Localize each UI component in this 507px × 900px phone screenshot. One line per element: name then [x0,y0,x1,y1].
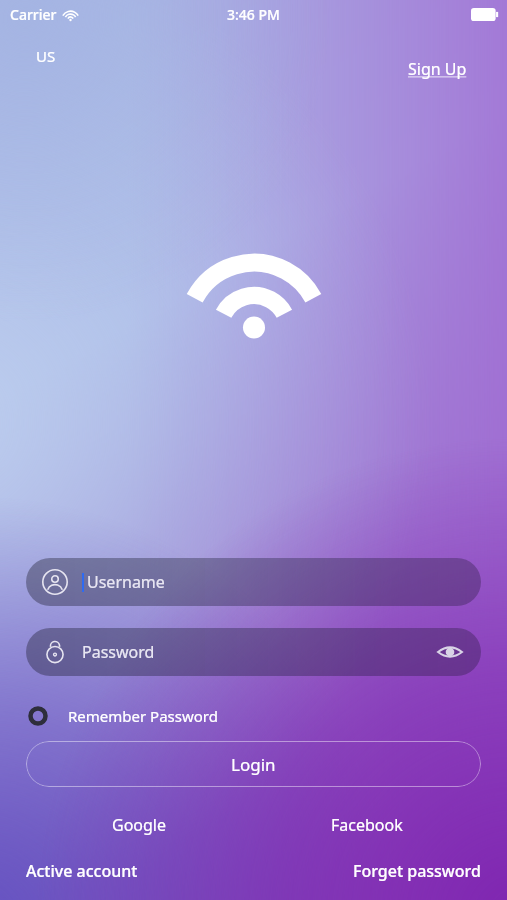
staticText: Remember Password [68,706,218,726]
button[interactable]: Username [26,558,481,606]
staticText: Facebook [331,814,403,836]
button[interactable]: Remember Password [26,702,220,730]
button[interactable]: Forget password [345,854,489,888]
staticText: Username [87,571,165,593]
button[interactable]: Google [102,809,177,841]
staticText: 3:46 PM [227,5,280,24]
staticText: Login [231,753,276,776]
staticText: Password [82,641,155,663]
staticText: Carrier [10,5,57,24]
staticText: US [36,46,56,66]
staticText: Forget password [353,860,481,882]
button[interactable]: Show password [435,637,465,667]
button[interactable]: Sign Up [404,54,471,84]
staticText: Sign Up [408,58,467,80]
button[interactable]: Active account [18,854,146,888]
staticText: Active account [26,860,138,882]
button[interactable]: US [26,40,66,72]
staticText: Google [112,814,167,836]
button[interactable]: Password [26,628,481,676]
button[interactable]: Facebook [321,809,413,841]
button[interactable]: Login [26,741,481,787]
